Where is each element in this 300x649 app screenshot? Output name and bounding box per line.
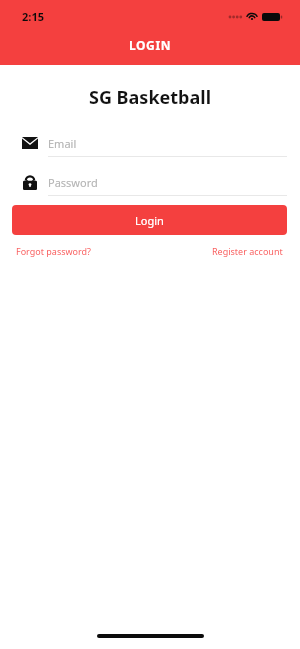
other: Email bbox=[22, 137, 38, 149]
staticText: SG Basketball bbox=[0, 85, 300, 110]
staticText: Email bbox=[48, 136, 77, 151]
staticText: Register account bbox=[212, 245, 283, 257]
staticText: Password bbox=[48, 175, 98, 190]
other: Password bbox=[23, 174, 37, 190]
button[interactable]: Password bbox=[12, 167, 287, 197]
staticText: LOGIN bbox=[0, 37, 300, 53]
button[interactable]: Forgot password? bbox=[16, 245, 92, 257]
button[interactable]: Login bbox=[12, 205, 287, 235]
staticText: 2:15 bbox=[22, 9, 44, 24]
button[interactable]: Email bbox=[12, 128, 287, 158]
staticText: Login bbox=[135, 213, 164, 228]
button[interactable]: Register account bbox=[212, 245, 283, 257]
staticText: Forgot password? bbox=[16, 245, 92, 257]
